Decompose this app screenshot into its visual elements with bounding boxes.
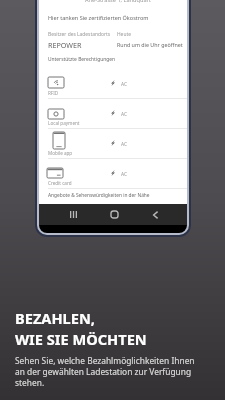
staticText: Besitzer des Ladestandorts	[48, 31, 111, 38]
staticText: Rund um die Uhr geöffnet	[117, 41, 183, 48]
button[interactable]: RFID	[39, 69, 187, 99]
staticText: Mobile app	[48, 150, 73, 156]
staticText: AC	[121, 141, 128, 148]
staticText: WIE SIE MÖCHTEN	[15, 329, 147, 349]
button[interactable]: Local payment	[39, 99, 187, 129]
staticText: AC	[121, 111, 128, 118]
button[interactable]: Home	[103, 204, 125, 225]
staticText: AC	[121, 81, 128, 88]
staticText: Sehen Sie, welche Bezahlmöglichkeiten Ih…	[15, 355, 200, 388]
staticText: Angebote & Sehenswürdigkeiten in der Näh…	[48, 192, 150, 199]
staticText: AC	[121, 171, 128, 178]
staticText: RFID	[48, 90, 59, 96]
staticText: Unterstützte Berechtigungen	[48, 56, 115, 63]
button[interactable]: Recent apps	[62, 204, 84, 225]
staticText: Heute	[117, 31, 131, 38]
button[interactable]: Credit card	[39, 159, 187, 189]
staticText: REPOWER	[48, 40, 82, 50]
staticText: Ane-Strasse 1, Landquart	[85, 0, 151, 4]
staticText: BEZAHLEN,	[15, 308, 95, 328]
staticText: Hier tanken Sie zertifizierten Ökostrom	[48, 14, 149, 21]
button[interactable]: Back	[144, 204, 166, 225]
staticText: Local payment	[48, 120, 80, 126]
staticText: Credit card	[48, 180, 72, 186]
button[interactable]: Mobile app	[39, 129, 187, 159]
